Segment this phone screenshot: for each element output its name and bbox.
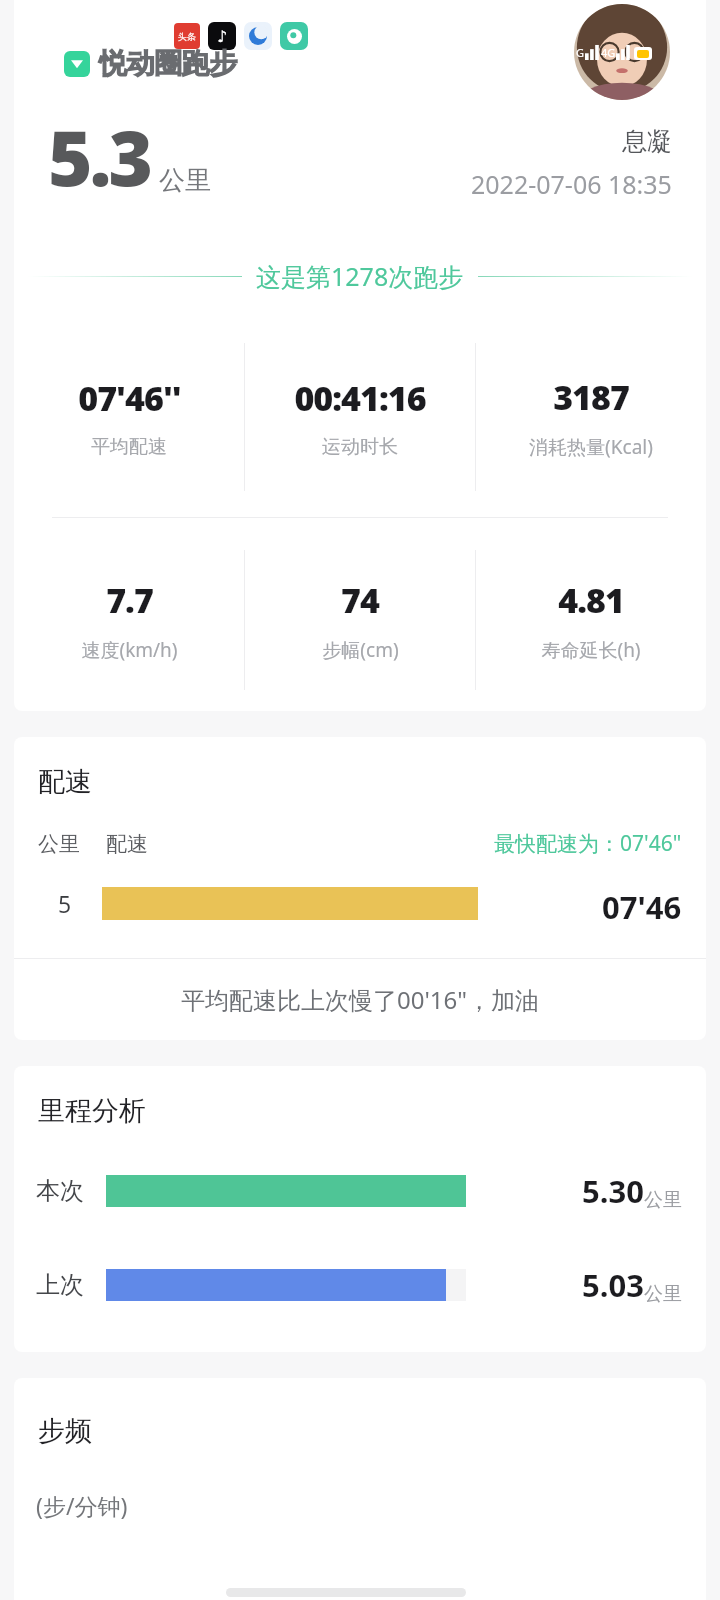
- button[interactable]: Profile avatar: [574, 4, 670, 100]
- staticText: (步/分钟): [36, 1490, 128, 1521]
- staticText: 平均配速: [91, 435, 167, 459]
- staticText: 消耗热量(Kcal): [529, 434, 653, 460]
- staticText: G: [576, 45, 585, 60]
- staticText: 平均配速比上次慢了00'16"，加油: [181, 983, 540, 1016]
- staticText: 本次: [36, 1176, 84, 1206]
- staticText: 5.3: [48, 105, 151, 205]
- staticText: 7.7: [106, 577, 153, 623]
- staticText: 步频: [38, 1414, 92, 1448]
- staticText: 公里: [644, 1282, 682, 1306]
- staticText: 运动时长: [322, 435, 398, 459]
- staticText: 公里: [644, 1188, 682, 1212]
- staticText: 里程分析: [38, 1094, 146, 1128]
- staticText: 4G: [601, 45, 616, 60]
- staticText: 3187: [553, 374, 629, 420]
- staticText: ♪: [217, 27, 228, 46]
- staticText: 寿命延长(h): [541, 637, 641, 663]
- staticText: 公里: [159, 164, 211, 197]
- staticText: 步幅(cm): [322, 637, 399, 663]
- staticText: 2022-07-06 18:35: [471, 167, 672, 201]
- staticText: 07'46'': [78, 375, 181, 421]
- staticText: 头条: [178, 31, 196, 42]
- staticText: 速度(km/h): [81, 637, 178, 663]
- staticText: 配速: [38, 765, 92, 799]
- staticText: 4.81: [558, 577, 624, 623]
- staticText: 74: [341, 577, 379, 623]
- staticText: 配速: [106, 831, 148, 857]
- staticText: 5.30: [582, 1170, 644, 1212]
- staticText: 公里: [38, 831, 80, 857]
- button[interactable]: 4.81: [476, 577, 706, 663]
- button[interactable]: 74: [245, 577, 475, 663]
- button[interactable]: 平均配速比上次慢了00'16"，加油: [14, 959, 706, 1040]
- button[interactable]: 07'46'': [14, 375, 244, 459]
- staticText: 悦动圈跑步: [99, 46, 237, 81]
- staticText: 上次: [36, 1270, 84, 1300]
- staticText: 5: [58, 888, 72, 919]
- staticText: 最快配速为：07'46": [494, 829, 682, 858]
- button[interactable]: 3187: [476, 374, 706, 460]
- staticText: 这是第1278次跑步: [256, 259, 464, 293]
- staticText: 00:41:16: [294, 375, 426, 421]
- button[interactable]: 7.7: [14, 577, 244, 663]
- staticText: 07'46: [602, 886, 682, 920]
- button[interactable]: 00:41:16: [245, 375, 475, 459]
- button[interactable]: 本次: [36, 1170, 682, 1212]
- staticText: 5.03: [582, 1264, 644, 1306]
- staticText: 息凝: [622, 126, 672, 157]
- button[interactable]: 上次: [36, 1264, 682, 1306]
